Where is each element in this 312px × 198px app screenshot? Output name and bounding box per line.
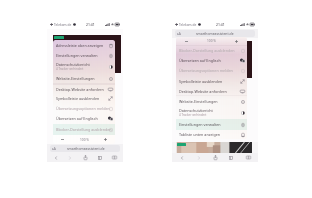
button[interactable]: Symbolleiste ausblenden xyxy=(176,75,247,87)
staticText: Datenschutzbericht xyxy=(56,62,90,67)
button[interactable]: Bookmarks xyxy=(94,153,106,162)
button[interactable]: Adressleiste oben anzeigen xyxy=(53,40,115,50)
staticText: Blocker-Darstellung ausblenden xyxy=(56,127,112,132)
staticText: Desktop-Website anfordern xyxy=(56,87,104,92)
staticText: Übersetzungsoptionen melden xyxy=(179,68,233,73)
button[interactable]: ᴀA xyxy=(175,30,255,37)
button[interactable]: Tabs xyxy=(108,153,120,162)
button[interactable]: 100 % xyxy=(72,135,96,144)
button[interactable]: Einstellungen verwalten xyxy=(176,119,247,130)
staticText: Adressleiste oben anzeigen xyxy=(56,43,104,48)
staticText: 21:41 xyxy=(216,22,225,27)
button[interactable]: Forward xyxy=(64,153,76,162)
button[interactable]: Symbolleiste ausblenden xyxy=(53,93,115,103)
button[interactable]: Übersetzen auf Englisch xyxy=(53,113,115,124)
button[interactable]: ᴀA xyxy=(50,145,120,152)
button[interactable]: Zoom in xyxy=(96,135,115,144)
button[interactable]: Website-Einstellungen xyxy=(176,96,247,106)
button[interactable]: Tabliste unten anzeigen xyxy=(176,130,247,139)
button[interactable]: Forward xyxy=(193,153,205,162)
button[interactable]: Share xyxy=(79,153,91,162)
button[interactable]: Übersetzungsoptionen melden xyxy=(176,66,247,75)
staticText: ᴀA xyxy=(177,32,181,36)
staticText: Website-Einstellungen xyxy=(56,76,95,81)
staticText: 21:41 xyxy=(86,22,95,27)
staticText: Datenschutzbericht xyxy=(179,108,213,113)
staticText: 100 % xyxy=(80,138,89,142)
button[interactable]: 100 % xyxy=(197,37,225,45)
staticText: Desktop-Website anfordern xyxy=(179,89,227,94)
staticText: Übersetzungsoptionen melden xyxy=(56,106,110,111)
staticText: 100 % xyxy=(207,39,216,43)
staticText: Übersetzen auf Englisch xyxy=(56,116,98,121)
button[interactable]: Zoom out xyxy=(176,37,197,45)
staticText: Tabliste unten anzeigen xyxy=(179,132,221,137)
button[interactable]: Einstellungen verwalten xyxy=(53,50,115,60)
staticText: ᴀA xyxy=(52,147,56,151)
button[interactable]: Back xyxy=(176,153,188,162)
staticText: Website-Einstellungen xyxy=(179,99,218,104)
staticText: 4 Tracker verhindert xyxy=(56,67,84,71)
button[interactable]: Back xyxy=(50,153,62,162)
button[interactable]: Share xyxy=(209,153,221,162)
button[interactable]: Blocker-Darstellung ausblenden xyxy=(176,46,247,55)
staticText: smarthomeassistent.de xyxy=(196,31,234,36)
button[interactable]: Datenschutzbericht xyxy=(176,106,247,119)
button[interactable]: Übersetzen auf Englisch xyxy=(176,55,247,66)
button[interactable]: Zoom out xyxy=(53,135,72,144)
staticText: Übersetzen auf Englisch xyxy=(179,58,221,63)
button[interactable]: Übersetzungsoptionen melden xyxy=(53,103,115,113)
button[interactable]: Desktop-Website anfordern xyxy=(176,87,247,95)
button[interactable]: Blocker-Darstellung ausblenden xyxy=(53,124,115,135)
button[interactable]: Tabs xyxy=(242,153,254,162)
staticText: 4 Tracker verhindert xyxy=(179,113,207,117)
button[interactable]: Zoom in xyxy=(225,37,247,45)
staticText: Einstellungen verwalten xyxy=(179,122,221,127)
staticText: Telekom.de xyxy=(54,23,72,27)
staticText: Telekom.de xyxy=(179,23,197,27)
button[interactable]: Website-Einstellungen xyxy=(53,73,115,83)
staticText: Blocker-Darstellung ausblenden xyxy=(179,48,235,53)
staticText: Symbolleiste ausblenden xyxy=(179,79,223,84)
button[interactable]: Bookmarks xyxy=(225,153,237,162)
staticText: Symbolleiste ausblenden xyxy=(56,96,100,101)
button[interactable]: Desktop-Website anfordern xyxy=(53,85,115,93)
button[interactable]: Datenschutzbericht xyxy=(53,60,115,73)
staticText: smarthomeassistent.de xyxy=(67,146,105,151)
staticText: Einstellungen verwalten xyxy=(56,53,98,58)
